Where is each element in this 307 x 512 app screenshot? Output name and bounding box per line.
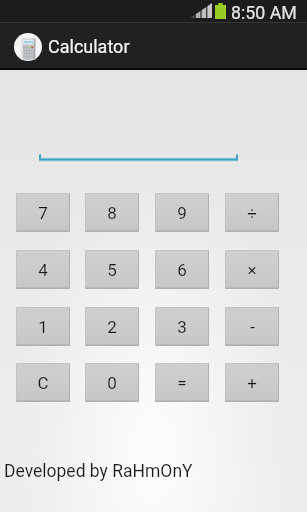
button[interactable]: ×: [225, 250, 279, 289]
button[interactable]: =: [155, 363, 209, 402]
button[interactable]: -: [225, 307, 279, 346]
button[interactable]: 1: [16, 307, 70, 346]
staticText: 3: [177, 317, 187, 337]
staticText: 0: [107, 373, 117, 393]
button[interactable]: C: [16, 363, 70, 402]
staticText: 8:50 AM: [231, 2, 297, 23]
staticText: 9: [177, 203, 187, 223]
staticText: 7: [38, 203, 48, 223]
button[interactable]: 2: [85, 307, 139, 346]
button[interactable]: 3: [155, 307, 209, 346]
staticText: -: [250, 317, 255, 337]
button[interactable]: Expression input: [39, 133, 238, 161]
button[interactable]: 5: [85, 250, 139, 289]
staticText: 8: [107, 203, 117, 223]
button[interactable]: 0: [85, 363, 139, 402]
button[interactable]: ÷: [225, 193, 279, 232]
button[interactable]: Calculator: [0, 23, 307, 68]
staticText: 5: [107, 260, 117, 280]
button[interactable]: 6: [155, 250, 209, 289]
staticText: ×: [247, 260, 257, 280]
staticText: ÷: [247, 203, 257, 223]
button[interactable]: 4: [16, 250, 70, 289]
staticText: 2: [107, 317, 117, 337]
staticText: =: [177, 373, 187, 393]
button[interactable]: 9: [155, 193, 209, 232]
button[interactable]: +: [225, 363, 279, 402]
staticText: C: [37, 373, 49, 393]
staticText: Developed by RaHmOnY: [4, 461, 193, 482]
staticText: +: [247, 373, 257, 393]
staticText: 6: [177, 260, 187, 280]
button[interactable]: 8: [85, 193, 139, 232]
staticText: 4: [38, 260, 48, 280]
staticText: 1: [38, 317, 48, 337]
button[interactable]: 7: [16, 193, 70, 232]
staticText: Calculator: [48, 36, 130, 57]
